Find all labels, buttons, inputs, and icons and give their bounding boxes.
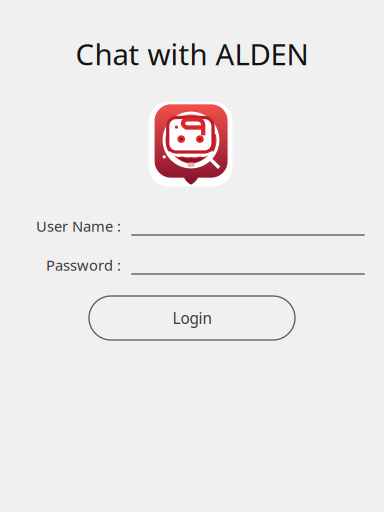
staticText: Chat with ALDEN bbox=[75, 34, 308, 74]
button[interactable]: Login bbox=[89, 296, 295, 340]
staticText: Login bbox=[172, 308, 211, 328]
staticText: Password : bbox=[46, 255, 121, 275]
staticText: User Name : bbox=[36, 216, 121, 236]
